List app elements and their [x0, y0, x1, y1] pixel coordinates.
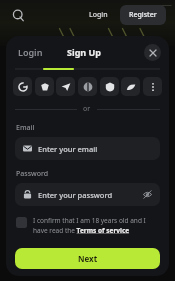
button[interactable]: More options [143, 77, 162, 96]
button[interactable]: Sign in with Google [13, 77, 32, 96]
staticText: Sign Up [67, 46, 102, 58]
button[interactable]: Search [9, 6, 27, 24]
button[interactable]: I confirm that I am 18 years old and I h… [16, 216, 159, 235]
button[interactable]: Login [83, 6, 114, 24]
button[interactable]: Sign Up [63, 41, 106, 63]
button[interactable]: Login [14, 41, 47, 63]
staticText: Register [129, 10, 157, 20]
staticText: Enter your password [38, 190, 113, 200]
button[interactable]: Close [144, 44, 161, 61]
button[interactable]: Password input [15, 183, 160, 206]
button[interactable]: Sign in with Apple [121, 77, 140, 96]
staticText: Password [16, 169, 49, 179]
staticText: Email [16, 123, 35, 133]
button[interactable]: Sign in with Mail [100, 77, 119, 96]
staticText: Login [18, 46, 43, 58]
button[interactable]: Next [15, 248, 160, 269]
staticText: Enter your email [38, 144, 98, 154]
button[interactable]: Sign in with Yandex [78, 77, 97, 96]
button[interactable]: Email input [15, 137, 160, 160]
button[interactable]: Sign in with VK [35, 77, 54, 96]
staticText: Login [89, 10, 108, 20]
staticText: I confirm that I am 18 years old and I h… [33, 216, 159, 235]
button[interactable]: Register [120, 5, 166, 25]
staticText: Next [78, 253, 98, 264]
staticText: or [83, 104, 91, 114]
button[interactable]: Sign in with Telegram [56, 77, 75, 96]
